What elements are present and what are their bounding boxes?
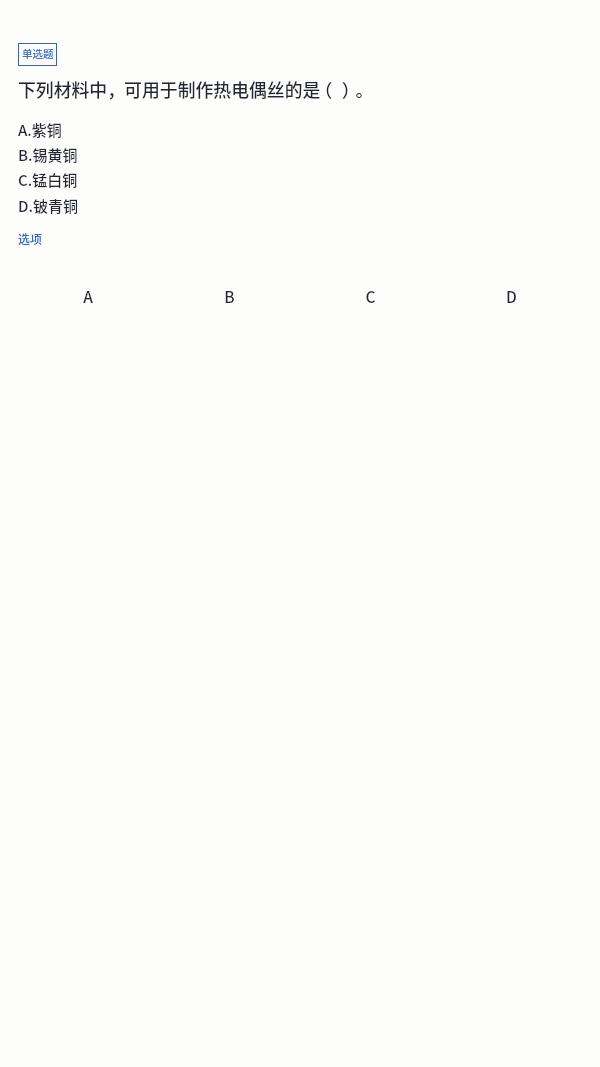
button[interactable]: Answer D: [441, 285, 582, 307]
button[interactable]: D.铍青铜: [0, 195, 600, 220]
staticText: 单选题: [22, 46, 54, 61]
button[interactable]: A.紫铜: [0, 119, 600, 144]
staticText: C.锰白铜: [18, 169, 78, 191]
staticText: D: [506, 285, 517, 307]
staticText: 下列材料中，可用于制作热电偶丝的是（）。: [18, 76, 374, 102]
button[interactable]: B.锡黄铜: [0, 144, 600, 169]
button[interactable]: 单选题: [18, 43, 57, 66]
staticText: A.紫铜: [18, 119, 62, 141]
button[interactable]: Answer A: [17, 285, 159, 307]
staticText: B.锡黄铜: [18, 144, 78, 166]
button[interactable]: C.锰白铜: [0, 169, 600, 194]
button[interactable]: Answer B: [159, 285, 300, 307]
staticText: D.铍青铜: [18, 195, 78, 217]
staticText: A: [83, 285, 93, 307]
button[interactable]: Answer C: [300, 285, 441, 307]
staticText: C: [365, 285, 376, 307]
staticText: B: [224, 285, 235, 307]
button[interactable]: 选项: [18, 230, 43, 247]
